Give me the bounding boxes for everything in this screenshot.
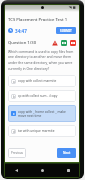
- button[interactable]: c: [8, 105, 76, 122]
- staticText: Previous: [11, 151, 24, 155]
- staticText: Next: [63, 151, 71, 155]
- button[interactable]: Back: [11, 165, 21, 175]
- button[interactable]: b: [8, 90, 76, 102]
- staticText: d: [13, 130, 15, 134]
- button[interactable]: Home: [37, 165, 47, 175]
- staticText: c: [13, 112, 15, 116]
- button[interactable]: d: [8, 125, 76, 137]
- staticText: tar with unique marmite: [18, 129, 55, 133]
- staticText: a: [13, 80, 15, 84]
- staticText: Which command is used to copy files from…: [8, 49, 76, 71]
- staticText: 34:47: [15, 28, 27, 34]
- staticText: SUBMIT: [60, 29, 72, 33]
- button[interactable]: Previous: [8, 148, 26, 158]
- staticText: copy with collect marmite: [18, 79, 57, 83]
- staticText: Question 1/30: [8, 40, 37, 46]
- staticText: b: [13, 95, 15, 99]
- button[interactable]: SUBMIT: [56, 27, 76, 34]
- button[interactable]: Recent apps: [63, 165, 73, 175]
- button[interactable]: Next: [57, 148, 76, 158]
- button[interactable]: a: [8, 75, 76, 87]
- button[interactable]: Video help: [70, 40, 76, 46]
- button[interactable]: Report issue: [52, 40, 58, 46]
- staticText: TCS Placement Practice Test 1: [8, 17, 68, 23]
- staticText: cp with collect sum - /copy: [18, 94, 58, 98]
- button[interactable]: Rewards: [61, 40, 67, 46]
- staticText: copy with _ home collect _ make move nex…: [18, 110, 73, 118]
